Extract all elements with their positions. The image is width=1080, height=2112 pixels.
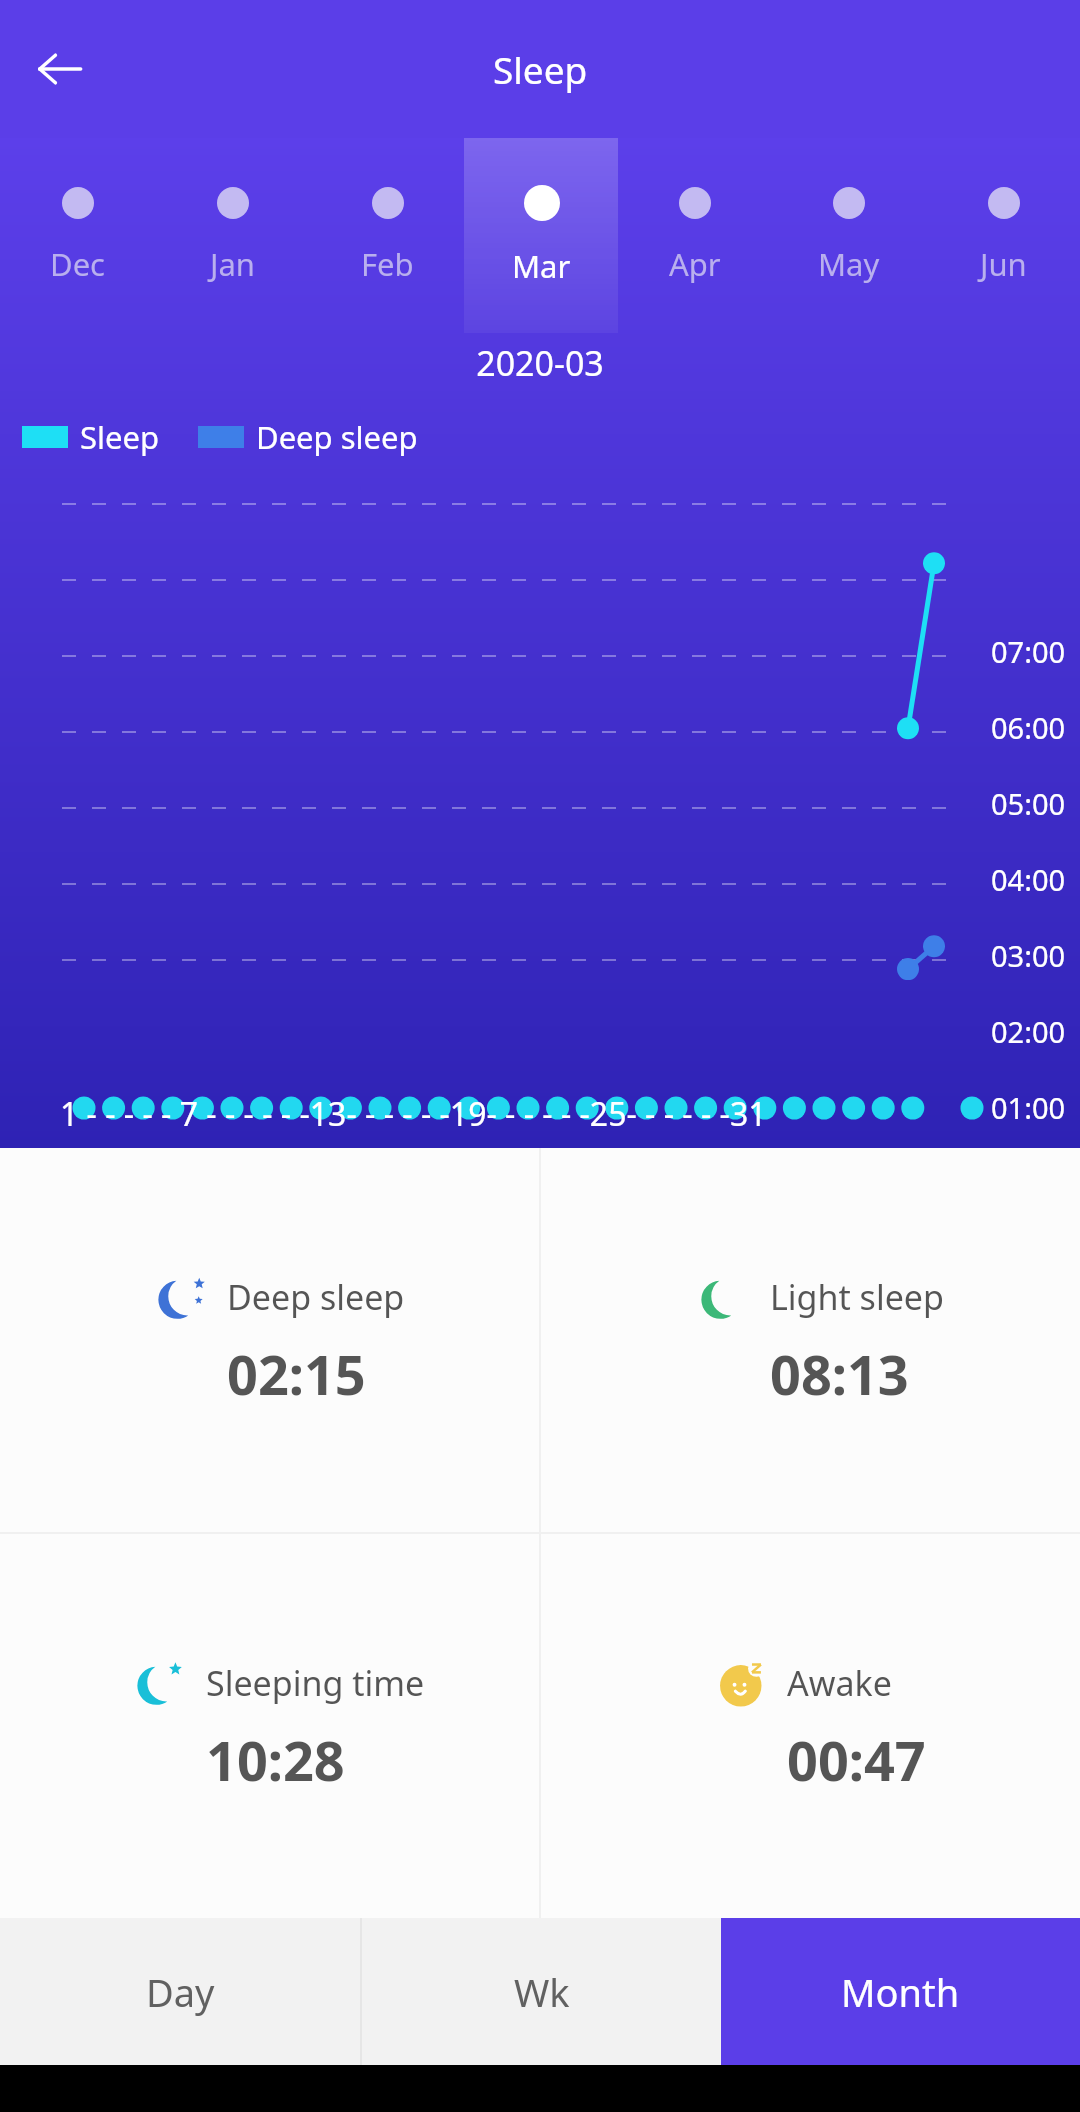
staticText: 01:00 <box>991 1088 1066 1127</box>
button[interactable]: May <box>772 138 926 333</box>
button[interactable]: Month <box>721 1918 1080 2065</box>
staticText: 02:00 <box>991 1012 1066 1051</box>
staticText: Awake <box>787 1660 892 1706</box>
button[interactable]: Mar <box>464 138 618 333</box>
staticText: 05:00 <box>991 784 1066 823</box>
button[interactable]: Light sleep <box>541 1148 1080 1532</box>
staticText: Sleep <box>80 416 160 458</box>
staticText: Dec <box>50 243 105 285</box>
staticText: 10:28 <box>206 1723 345 1797</box>
staticText: Feb <box>361 243 414 285</box>
staticText: 00:47 <box>787 1723 926 1797</box>
staticText: 03:00 <box>991 936 1066 975</box>
staticText: 08:13 <box>770 1337 909 1411</box>
staticText: Jan <box>210 243 256 285</box>
staticText: Sleeping time <box>206 1660 425 1706</box>
button[interactable]: Jun <box>926 138 1080 333</box>
staticText: 04:00 <box>991 860 1066 899</box>
staticText: Sleep <box>493 44 588 94</box>
staticText: Apr <box>669 243 721 285</box>
staticText: Jun <box>980 243 1027 285</box>
button[interactable]: Dec <box>0 138 155 333</box>
staticText: Deep sleep <box>227 1274 405 1320</box>
button[interactable]: Apr <box>618 138 772 333</box>
button[interactable]: Jan <box>155 138 310 333</box>
staticText: 06:00 <box>991 708 1066 747</box>
staticText: Deep sleep <box>256 416 418 458</box>
button[interactable]: Day <box>0 1918 360 2065</box>
staticText: Wk <box>514 1966 570 2018</box>
button[interactable]: Deep sleep <box>0 1148 539 1532</box>
button[interactable]: Wk <box>362 1918 721 2065</box>
button[interactable]: Sleeping time <box>0 1534 539 1918</box>
staticText: Mar <box>512 245 571 287</box>
staticText: Day <box>146 1966 215 2018</box>
button[interactable]: Awake <box>541 1534 1080 1918</box>
staticText: 2020-03 <box>0 340 1080 386</box>
button[interactable]: Feb <box>310 138 464 333</box>
staticText: 1 - - - - - 7 - - - - - -13- - - - - -19… <box>60 1092 767 1136</box>
staticText: 07:00 <box>991 632 1066 671</box>
staticText: Month <box>841 1966 960 2018</box>
staticText: 02:15 <box>227 1337 366 1411</box>
staticText: Light sleep <box>770 1274 944 1320</box>
staticText: May <box>818 243 880 285</box>
button[interactable]: Back <box>20 29 100 109</box>
